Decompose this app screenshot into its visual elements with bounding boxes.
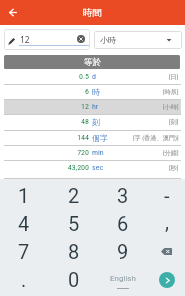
button[interactable]: , bbox=[147, 209, 185, 237]
button[interactable]: 5 bbox=[48, 209, 100, 237]
button[interactable]: 8 bbox=[48, 237, 100, 265]
staticText: 等於 bbox=[84, 57, 101, 68]
button[interactable]: Back bbox=[3, 2, 23, 22]
staticText: [時辰] bbox=[163, 88, 179, 96]
staticText: 12 bbox=[20, 34, 30, 46]
button[interactable]: 3 bbox=[99, 181, 147, 209]
button[interactable]: 小時 bbox=[94, 31, 182, 49]
staticText: [刻] bbox=[169, 118, 179, 126]
staticText: 2 bbox=[68, 184, 80, 207]
staticText: [秒] bbox=[169, 164, 179, 172]
staticText: 5 bbox=[68, 212, 80, 235]
button[interactable]: 4 bbox=[0, 209, 48, 237]
button[interactable]: 1 bbox=[0, 181, 48, 209]
staticText: 0.5 bbox=[78, 72, 89, 81]
button[interactable]: 0.5 bbox=[4, 69, 181, 84]
button[interactable]: 12 bbox=[4, 99, 181, 114]
button[interactable]: 12 bbox=[4, 29, 90, 50]
staticText: 個字 bbox=[92, 133, 108, 143]
staticText: 6 bbox=[85, 87, 89, 96]
staticText: 時 bbox=[92, 87, 100, 97]
staticText: [日] bbox=[169, 73, 179, 81]
button[interactable]: 6 bbox=[4, 84, 181, 99]
staticText: . bbox=[21, 268, 27, 291]
staticText: [小時] bbox=[163, 103, 179, 111]
staticText: 144 bbox=[77, 133, 89, 142]
button[interactable]: - bbox=[147, 181, 185, 209]
staticText: min bbox=[92, 148, 104, 157]
button[interactable]: . bbox=[0, 265, 48, 293]
button[interactable]: 0 bbox=[48, 265, 100, 293]
button[interactable]: English bbox=[99, 265, 147, 293]
staticText: , bbox=[165, 210, 169, 233]
button[interactable]: 720 bbox=[4, 145, 181, 160]
staticText: 9 bbox=[117, 240, 129, 263]
button[interactable]: 43,200 bbox=[4, 160, 181, 175]
button[interactable]: 7 bbox=[0, 237, 48, 265]
button[interactable]: 6 bbox=[99, 209, 147, 237]
staticText: hr bbox=[92, 102, 99, 111]
staticText: 4 bbox=[18, 212, 30, 235]
staticText: 6 bbox=[117, 212, 129, 235]
button[interactable]: Backspace bbox=[147, 237, 185, 265]
staticText: 8 bbox=[68, 240, 80, 263]
staticText: 48 bbox=[81, 117, 89, 126]
staticText: d bbox=[92, 72, 96, 81]
staticText: 小時 bbox=[100, 35, 116, 45]
staticText: 12 bbox=[81, 102, 89, 111]
staticText: English bbox=[110, 274, 136, 283]
staticText: 刻 bbox=[92, 117, 100, 127]
staticText: 0 bbox=[68, 268, 80, 291]
staticText: 3 bbox=[117, 184, 129, 207]
staticText: 43,200 bbox=[67, 163, 89, 172]
button[interactable]: Enter bbox=[147, 265, 185, 293]
button[interactable]: 9 bbox=[99, 237, 147, 265]
staticText: 1 bbox=[18, 184, 30, 207]
button[interactable]: 48 bbox=[4, 114, 181, 129]
button[interactable]: 2 bbox=[48, 181, 100, 209]
staticText: sec bbox=[92, 163, 104, 172]
staticText: [字 (香港、澳門)] bbox=[133, 134, 179, 142]
staticText: - bbox=[164, 184, 170, 207]
button[interactable]: 144 bbox=[4, 130, 181, 145]
staticText: 720 bbox=[77, 148, 89, 157]
staticText: [分鐘] bbox=[163, 149, 179, 157]
staticText: 7 bbox=[18, 240, 30, 263]
staticText: 時間 bbox=[83, 7, 102, 19]
button[interactable]: Clear bbox=[77, 35, 85, 43]
